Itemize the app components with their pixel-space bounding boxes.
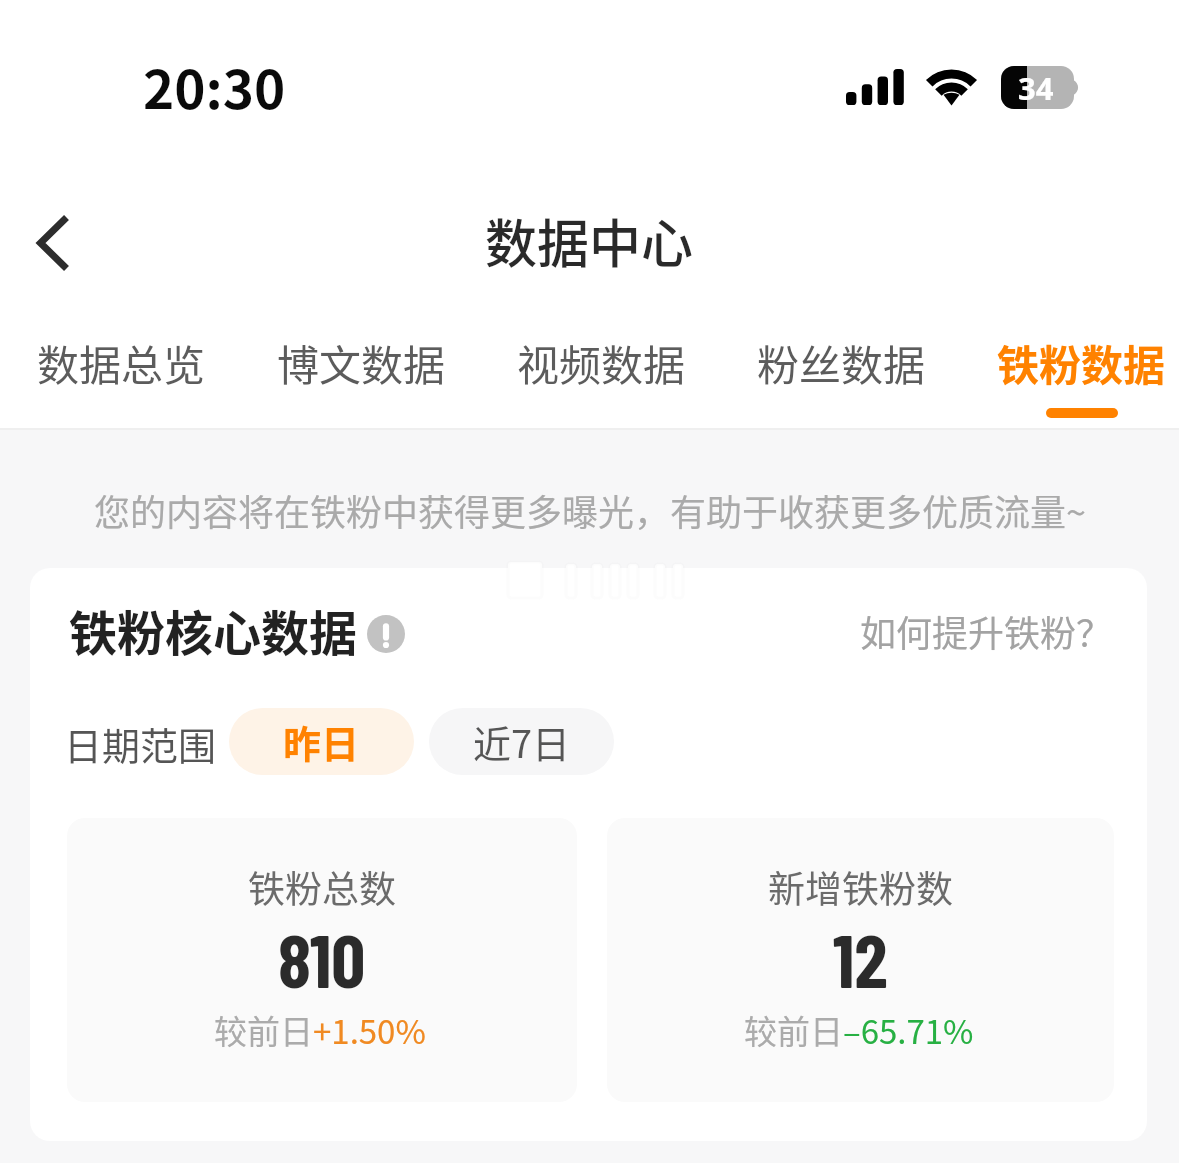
staticText: 视频数据 [517, 332, 686, 393]
staticText: 34 [1018, 67, 1054, 109]
staticText: 较前日 [214, 1006, 313, 1054]
staticText: +1.50% [313, 1006, 426, 1054]
staticText: 数据总览 [37, 332, 206, 393]
button[interactable]: 博文数据 [277, 332, 446, 408]
staticText: 博文数据 [277, 332, 446, 393]
staticText: 810 [278, 913, 366, 1003]
staticText: –65.71% [843, 1006, 974, 1054]
button[interactable]: 如何提升铁粉？ [860, 605, 1113, 657]
button[interactable]: 视频数据 [517, 332, 686, 408]
staticText: 铁粉总数 [248, 860, 396, 914]
button[interactable]: 新增铁粉数 [607, 818, 1114, 1102]
button[interactable]: 近7日 [429, 708, 614, 775]
button[interactable]: 铁粉数据 [997, 332, 1166, 418]
staticText: 较前日 [744, 1006, 843, 1054]
button[interactable]: 数据总览 [37, 332, 206, 408]
staticText: 近7日 [473, 714, 571, 769]
staticText: 新增铁粉数 [768, 860, 953, 914]
staticText: 昨日 [283, 714, 360, 769]
button[interactable]: Info [367, 615, 405, 653]
button[interactable]: Back [17, 207, 89, 279]
button[interactable]: 铁粉总数 [67, 818, 577, 1102]
staticText: 数据中心 [485, 203, 694, 278]
staticText: 铁粉核心数据 [69, 595, 358, 665]
staticText: 12 [833, 913, 888, 1003]
staticText: 您的内容将在铁粉中获得更多曝光，有助于收获更多优质流量~ [94, 484, 1086, 536]
staticText: 粉丝数据 [757, 332, 926, 393]
staticText: 20:30 [143, 48, 286, 125]
button[interactable]: 昨日 [229, 708, 414, 775]
staticText: 日期范围 [64, 716, 217, 771]
staticText: 铁粉数据 [997, 332, 1166, 393]
button[interactable]: 粉丝数据 [757, 332, 926, 408]
